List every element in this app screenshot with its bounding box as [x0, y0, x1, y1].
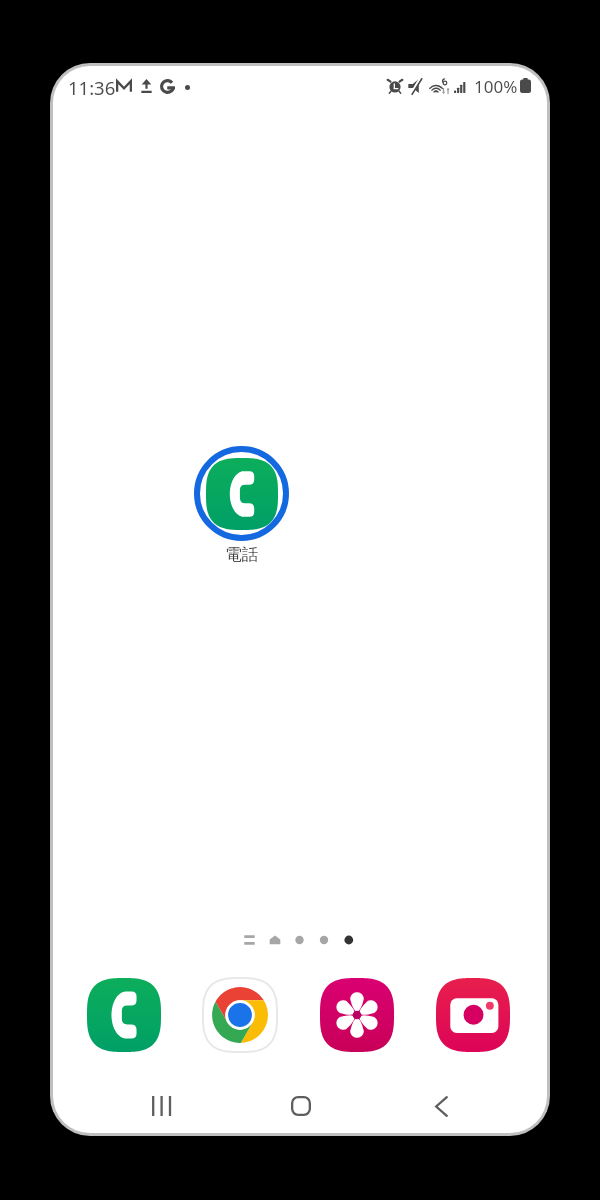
button[interactable]: Gallery — [320, 978, 394, 1052]
staticText: 電話 — [225, 544, 258, 564]
staticText: 100% — [474, 75, 518, 98]
button[interactable]: Back — [418, 1084, 464, 1128]
button[interactable]: Phone — [87, 978, 161, 1052]
button[interactable]: Chrome — [203, 978, 277, 1052]
button[interactable]: Camera — [436, 978, 510, 1052]
button[interactable]: 電話 — [193, 446, 289, 564]
button[interactable]: Recents — [138, 1084, 184, 1128]
staticText: 11:36 — [68, 75, 116, 100]
button[interactable]: Home — [278, 1084, 324, 1128]
